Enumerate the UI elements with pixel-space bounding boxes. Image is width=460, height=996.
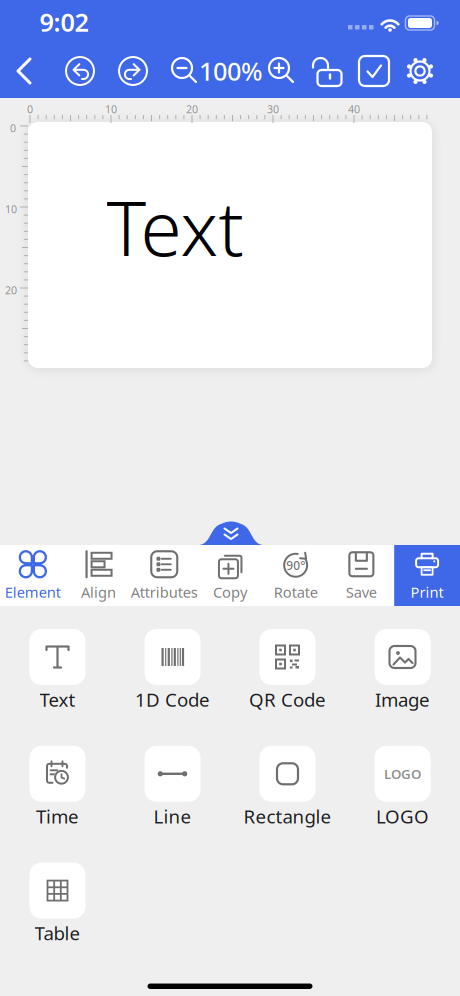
button[interactable]: Back xyxy=(9,51,41,91)
button[interactable]: Rectangle xyxy=(230,746,345,829)
staticText: 0 xyxy=(27,102,33,116)
staticText: Copy xyxy=(213,582,247,602)
staticText: 20 xyxy=(186,102,198,116)
button[interactable]: Collapse panel xyxy=(199,520,263,545)
button[interactable]: LOGO xyxy=(345,746,460,829)
button[interactable]: Zoom in xyxy=(266,57,294,85)
button[interactable]: Settings xyxy=(404,55,436,87)
staticText: Print xyxy=(411,582,444,602)
staticText: 1D Code xyxy=(135,687,210,712)
staticText: QR Code xyxy=(249,687,326,712)
button[interactable]: Image xyxy=(345,629,460,712)
button[interactable]: Save xyxy=(328,545,394,606)
button[interactable]: Copy xyxy=(197,545,263,606)
staticText: Attributes xyxy=(131,582,198,602)
staticText: Text xyxy=(106,177,243,277)
button[interactable]: Time xyxy=(0,746,115,829)
button[interactable]: Line xyxy=(115,746,230,829)
button[interactable]: Table xyxy=(0,863,115,945)
staticText: 30 xyxy=(267,102,279,116)
staticText: 90° xyxy=(286,557,305,573)
button[interactable]: Multi-select xyxy=(359,56,389,86)
staticText: Table xyxy=(34,921,80,945)
staticText: 0 xyxy=(10,121,16,135)
button[interactable]: Redo xyxy=(117,55,149,87)
staticText: 40 xyxy=(348,102,360,116)
staticText: Image xyxy=(375,687,430,712)
staticText: 10 xyxy=(5,202,17,216)
staticText: Line xyxy=(153,804,191,829)
button[interactable]: 90° xyxy=(263,545,328,606)
button[interactable]: Unlock xyxy=(310,55,344,87)
staticText: Rectangle xyxy=(243,804,331,829)
button[interactable]: Zoom out xyxy=(169,57,197,85)
button[interactable]: Text xyxy=(0,629,115,712)
staticText: LOGO xyxy=(384,765,421,783)
staticText: LOGO xyxy=(376,804,429,829)
staticText: Text xyxy=(39,687,75,712)
button[interactable]: Attributes xyxy=(131,545,197,606)
button[interactable]: QR Code xyxy=(230,629,345,712)
button[interactable]: Print xyxy=(394,545,460,606)
button[interactable]: Align xyxy=(66,545,131,606)
staticText: 100% xyxy=(199,54,263,88)
staticText: Align xyxy=(81,582,116,602)
button[interactable]: Element xyxy=(0,545,66,606)
button[interactable]: Undo xyxy=(64,55,96,87)
staticText: Save xyxy=(346,582,377,602)
staticText: 20 xyxy=(5,283,17,297)
staticText: 9:02 xyxy=(39,5,88,39)
staticText: 10 xyxy=(105,102,117,116)
staticText: Rotate xyxy=(274,582,318,602)
staticText: Time xyxy=(36,804,79,829)
button[interactable]: 1D Code xyxy=(115,629,230,712)
staticText: Element xyxy=(5,582,61,602)
